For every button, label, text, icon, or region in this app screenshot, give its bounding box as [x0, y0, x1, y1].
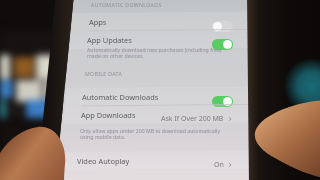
staticText: MOBILE DATA — [85, 70, 123, 77]
button[interactable]: Switch on — [212, 96, 233, 107]
staticText: Video Autoplay — [77, 156, 130, 166]
button[interactable]: Switch on — [212, 39, 233, 50]
staticText: On — [214, 160, 224, 170]
staticText: Ask If Over 200 MB — [161, 114, 224, 124]
staticText: AUTOMATIC DOWNLOADS — [91, 1, 162, 8]
staticText: App Updates — [87, 35, 132, 45]
staticText: Automatically download new purchases (in… — [87, 46, 222, 60]
staticText: Automatic Downloads — [82, 92, 159, 102]
staticText: Only allow apps under 200 MB to download… — [80, 127, 221, 141]
staticText: App Downloads — [81, 110, 136, 120]
staticText: Apps — [89, 17, 107, 27]
button[interactable]: Switch off — [212, 21, 233, 32]
